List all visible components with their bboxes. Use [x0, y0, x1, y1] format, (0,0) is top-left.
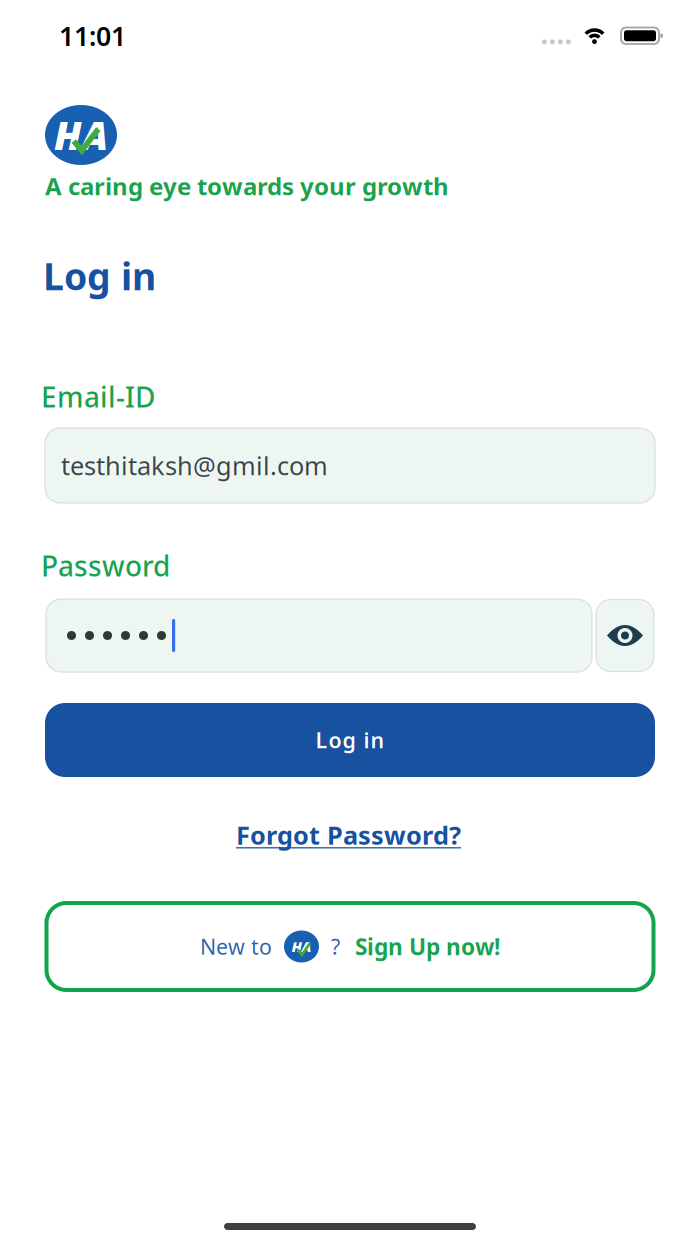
staticText: HA — [291, 937, 311, 956]
staticText: Log in — [43, 251, 156, 301]
button[interactable]: testhitaksh@gmil.com — [45, 428, 655, 503]
button[interactable]: Forgot Password? — [236, 818, 461, 852]
staticText: A caring eye towards your growth — [45, 170, 449, 202]
staticText: testhitaksh@gmil.com — [61, 449, 328, 482]
staticText: 11:01 — [59, 18, 126, 53]
button[interactable]: Log in — [45, 703, 655, 777]
staticText: Sign Up now! — [355, 931, 500, 961]
staticText: Password — [41, 547, 170, 584]
button[interactable] — [596, 599, 654, 671]
button[interactable]: New to — [46, 903, 653, 990]
button[interactable] — [46, 599, 592, 672]
staticText: Forgot Password? — [236, 818, 461, 852]
staticText: Log in — [315, 726, 384, 754]
staticText: HA — [54, 109, 108, 161]
staticText: Email-ID — [41, 378, 155, 415]
staticText: New to — [200, 932, 272, 961]
staticText: ? — [331, 932, 340, 961]
